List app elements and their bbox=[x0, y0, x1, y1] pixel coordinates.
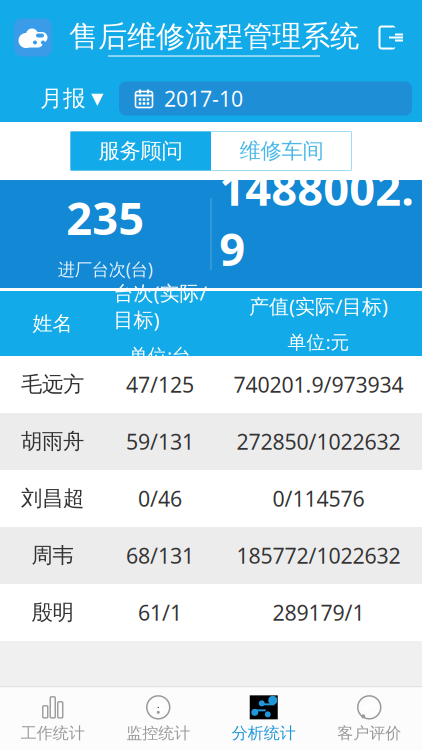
staticText: 服务顾问 bbox=[98, 138, 182, 164]
button[interactable]: 2017-10 bbox=[119, 81, 412, 115]
staticText: 台次(实际/目标) bbox=[113, 279, 206, 333]
staticText: 售后维修流程管理系统 bbox=[69, 18, 359, 54]
staticText: 47/125 bbox=[126, 370, 194, 399]
staticText: 毛远方 bbox=[21, 371, 84, 398]
staticText: 2017-10 bbox=[164, 84, 243, 113]
button[interactable]: 工作统计 bbox=[0, 687, 105, 750]
button[interactable]: Log out bbox=[376, 23, 422, 51]
staticText: 月报 bbox=[40, 85, 86, 112]
staticText: 客户评价 bbox=[337, 723, 401, 743]
staticText: ▼ bbox=[91, 89, 103, 108]
staticText: 周韦 bbox=[31, 542, 73, 569]
staticText: 分析统计 bbox=[232, 723, 296, 743]
staticText: 235 bbox=[66, 187, 144, 248]
staticText: 740201.9/973934 bbox=[233, 370, 403, 399]
staticText: 产值(实际/目标) bbox=[249, 293, 388, 319]
staticText: 1488002.9 bbox=[219, 158, 414, 279]
staticText: 59/131 bbox=[126, 427, 194, 456]
button[interactable]: 分析统计 bbox=[211, 687, 316, 750]
button[interactable]: 客户评价 bbox=[316, 687, 422, 750]
button[interactable]: 维修车间 bbox=[211, 131, 352, 171]
staticText: 维修车间 bbox=[239, 138, 323, 164]
staticText: 272850/1022632 bbox=[236, 427, 400, 456]
button[interactable]: 服务顾问 bbox=[70, 131, 211, 171]
staticText: 胡雨舟 bbox=[21, 428, 84, 455]
staticText: 工作统计 bbox=[21, 723, 85, 743]
staticText: 61/1 bbox=[138, 598, 182, 627]
staticText: 单位:元 bbox=[287, 329, 349, 354]
button[interactable]: 监控统计 bbox=[105, 687, 211, 750]
staticText: 0/46 bbox=[138, 484, 182, 513]
staticText: 殷明 bbox=[31, 599, 73, 626]
staticText: 结算产值 bbox=[283, 289, 351, 310]
staticText: 185772/1022632 bbox=[236, 541, 400, 570]
staticText: 刘昌超 bbox=[21, 485, 84, 512]
staticText: 监控统计 bbox=[126, 723, 190, 743]
button[interactable]: 月报 bbox=[0, 85, 119, 112]
staticText: 单位:台 bbox=[129, 343, 191, 367]
staticText: 289179/1 bbox=[272, 598, 364, 627]
staticText: 68/131 bbox=[126, 541, 194, 570]
staticText: 0/114576 bbox=[272, 484, 364, 513]
staticText: 姓名 bbox=[32, 311, 72, 336]
staticText: 进厂台次(台) bbox=[58, 258, 153, 281]
